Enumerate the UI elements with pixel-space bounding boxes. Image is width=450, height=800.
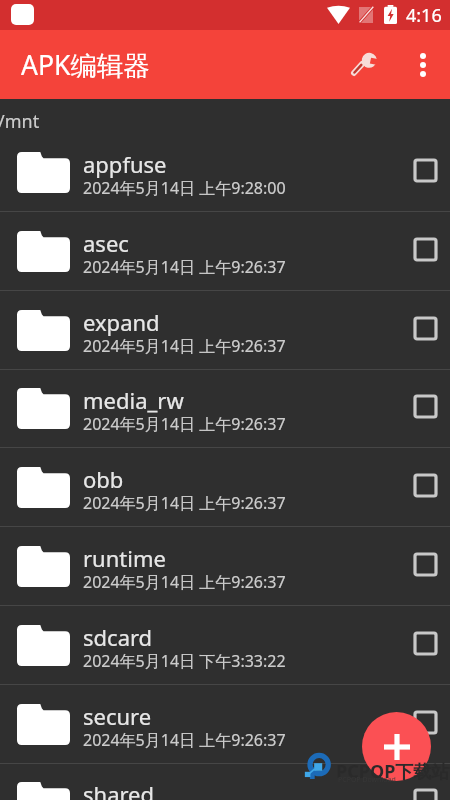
button[interactable]: Select appfuse xyxy=(414,159,436,181)
staticText: APK编辑器 xyxy=(21,47,150,83)
button[interactable]: obb xyxy=(0,448,450,527)
button[interactable]: sdcard xyxy=(0,606,450,685)
button[interactable]: Select asec xyxy=(414,238,436,260)
staticText: media_rw xyxy=(83,385,184,415)
staticText: 2024年5月14日 下午3:33:22 xyxy=(83,650,286,672)
button[interactable]: Select secure xyxy=(414,711,436,733)
button[interactable]: Select expand xyxy=(414,317,436,339)
staticText: /mnt xyxy=(0,109,40,134)
staticText: 2024年5月14日 上午9:26:37 xyxy=(83,729,286,751)
staticText: expand xyxy=(83,307,160,337)
staticText: PCPOP Download xyxy=(338,775,396,785)
staticText: 2024年5月14日 上午9:26:37 xyxy=(83,492,286,514)
button[interactable]: asec xyxy=(0,212,450,291)
staticText: appfuse xyxy=(83,149,167,179)
staticText: PCPOP下载站 xyxy=(336,759,450,784)
staticText: 2024年5月14日 上午9:26:37 xyxy=(83,413,286,435)
staticText: runtime xyxy=(83,543,166,573)
button[interactable]: Select obb xyxy=(414,474,436,496)
button[interactable]: Add xyxy=(362,712,431,781)
staticText: obb xyxy=(83,464,124,494)
staticText: 2024年5月14日 上午9:26:37 xyxy=(83,256,286,278)
staticText: secure xyxy=(83,701,152,731)
button[interactable]: expand xyxy=(0,291,450,370)
button[interactable]: Select media_rw xyxy=(414,395,436,417)
staticText: 2024年5月14日 上午9:28:00 xyxy=(83,177,286,199)
button[interactable]: Select runtime xyxy=(414,553,436,575)
staticText: 2024年5月14日 上午9:26:37 xyxy=(83,335,286,357)
button[interactable]: More options xyxy=(400,42,446,88)
staticText: shared xyxy=(83,779,155,800)
staticText: 4:16 xyxy=(406,3,442,28)
staticText: asec xyxy=(83,228,129,258)
button[interactable]: Tools xyxy=(340,42,386,88)
button[interactable]: runtime xyxy=(0,527,450,606)
button[interactable]: media_rw xyxy=(0,369,450,448)
button[interactable]: secure xyxy=(0,685,450,764)
staticText: sdcard xyxy=(83,622,153,652)
button[interactable]: Select shared xyxy=(414,789,436,800)
button[interactable]: Select sdcard xyxy=(414,632,436,654)
button[interactable]: shared xyxy=(0,763,450,800)
staticText: 2024年5月14日 上午9:26:37 xyxy=(83,571,286,593)
button[interactable]: appfuse xyxy=(0,133,450,212)
